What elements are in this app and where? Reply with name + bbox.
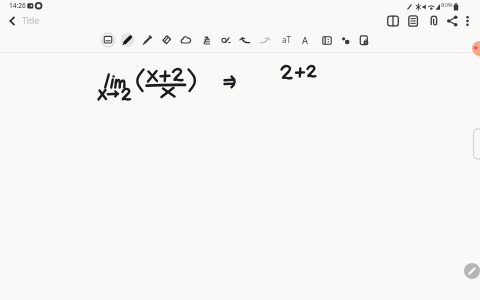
staticText: 14:26	[9, 1, 26, 10]
button[interactable]	[464, 263, 480, 279]
button[interactable]	[257, 32, 273, 48]
button[interactable]	[178, 32, 194, 48]
staticText: aT	[282, 34, 291, 45]
button[interactable]	[158, 32, 175, 48]
staticText: Title	[22, 15, 39, 27]
button[interactable]	[472, 41, 480, 56]
button[interactable]	[338, 32, 354, 48]
staticText: 80%	[441, 1, 453, 9]
button[interactable]	[238, 32, 254, 48]
button[interactable]	[462, 14, 473, 28]
button[interactable]	[427, 14, 441, 28]
button[interactable]: aT	[282, 34, 296, 46]
button[interactable]	[406, 14, 420, 28]
button[interactable]	[100, 32, 116, 48]
button[interactable]	[319, 32, 335, 48]
button[interactable]	[357, 32, 373, 48]
button[interactable]	[386, 14, 400, 28]
button[interactable]	[119, 32, 136, 48]
button[interactable]	[197, 32, 213, 48]
button[interactable]: A	[302, 34, 312, 46]
button[interactable]: Title	[22, 15, 82, 28]
staticText: A	[302, 34, 308, 46]
button[interactable]	[8, 15, 20, 29]
button[interactable]	[139, 32, 155, 48]
button[interactable]	[216, 32, 233, 48]
button[interactable]	[445, 14, 459, 28]
